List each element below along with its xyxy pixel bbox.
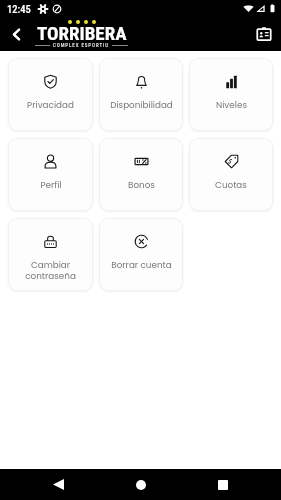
button[interactable]: Niveles — [189, 58, 273, 131]
staticText: TORRIBERA — [37, 22, 127, 44]
staticText: Disponibilidad — [110, 99, 173, 111]
staticText: Perfil — [40, 179, 62, 191]
staticText: Cambiar contraseña — [25, 259, 76, 283]
button[interactable]: Recents — [182, 469, 264, 500]
button[interactable]: Cambiar contraseña — [8, 218, 93, 291]
button[interactable]: Home — [100, 469, 182, 500]
button[interactable]: Bonos — [99, 138, 183, 211]
button[interactable]: Cuotas — [189, 138, 273, 211]
staticText: COMPLEX ESPORTIU — [53, 42, 109, 48]
staticText: 12:45 — [7, 3, 31, 15]
staticText: Borrar cuenta — [111, 259, 172, 271]
button[interactable]: Borrar cuenta — [99, 218, 183, 291]
staticText: Cuotas — [215, 179, 247, 191]
button[interactable]: Back — [0, 18, 33, 51]
staticText: Privacidad — [27, 99, 74, 111]
button[interactable]: Privacidad — [8, 58, 93, 131]
button[interactable]: Back — [17, 469, 100, 500]
button[interactable]: Perfil — [8, 138, 93, 211]
button[interactable]: Carnet — [247, 17, 281, 51]
button[interactable]: Disponibilidad — [99, 58, 183, 131]
staticText: Niveles — [216, 99, 247, 111]
staticText: Bonos — [128, 179, 155, 191]
